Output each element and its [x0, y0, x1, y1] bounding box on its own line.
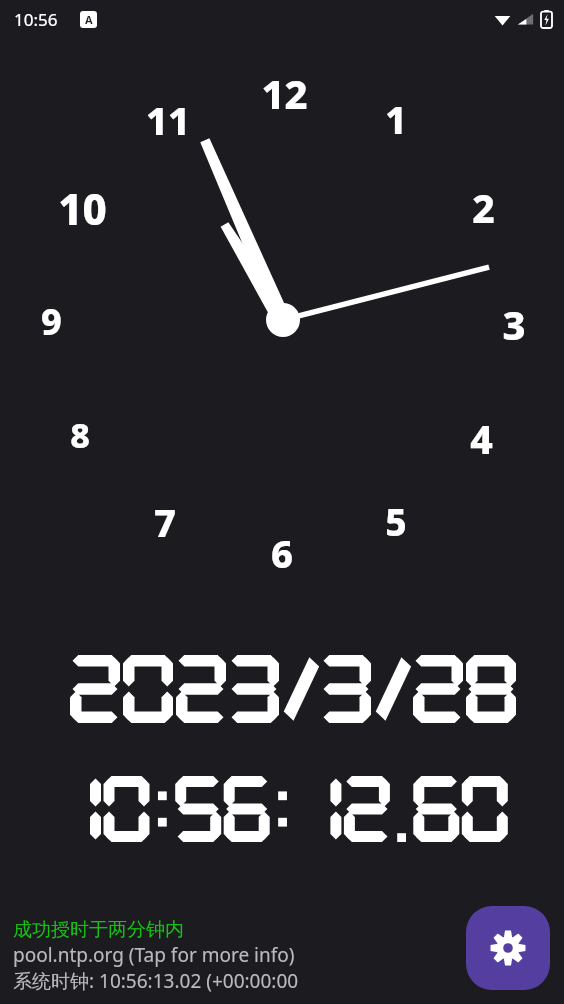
staticText: 10:56	[14, 8, 58, 31]
staticText: 9	[41, 297, 62, 346]
staticText: pool.ntp.org (Tap for more info)	[13, 942, 295, 968]
staticText: 7	[154, 496, 176, 548]
staticText: A	[85, 12, 93, 27]
button[interactable]: pool.ntp.org (Tap for more info)	[13, 942, 295, 968]
staticText: 11	[146, 94, 190, 146]
staticText: 系统时钟: 10:56:13.02 (+00:00:00	[13, 968, 299, 994]
staticText: 3	[502, 297, 526, 351]
button[interactable]: Settings	[466, 906, 550, 990]
staticText: 5	[385, 496, 407, 546]
staticText: 10	[58, 180, 107, 237]
staticText: 12	[261, 66, 308, 120]
staticText: 1	[385, 94, 407, 144]
staticText: 2	[472, 181, 495, 234]
staticText: 成功授时于两分钟内	[13, 918, 184, 942]
staticText: 6	[271, 527, 293, 579]
staticText: 8	[70, 412, 90, 458]
staticText: 4	[470, 412, 493, 465]
